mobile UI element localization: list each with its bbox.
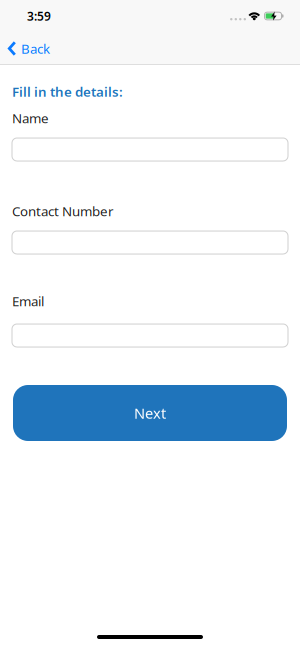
staticText: Name xyxy=(12,109,49,127)
staticText: Back xyxy=(21,40,50,57)
button[interactable]: Back xyxy=(0,40,50,57)
staticText: Next xyxy=(134,403,166,423)
button[interactable]: Name xyxy=(12,138,288,161)
button[interactable]: Next xyxy=(13,385,287,441)
staticText: Fill in the details: xyxy=(12,83,123,100)
staticText: Email xyxy=(12,292,44,310)
staticText: Contact Number xyxy=(12,202,114,220)
staticText: 3:59 xyxy=(27,8,51,24)
button[interactable]: Contact Number xyxy=(12,231,288,254)
button[interactable]: Email xyxy=(12,324,288,347)
